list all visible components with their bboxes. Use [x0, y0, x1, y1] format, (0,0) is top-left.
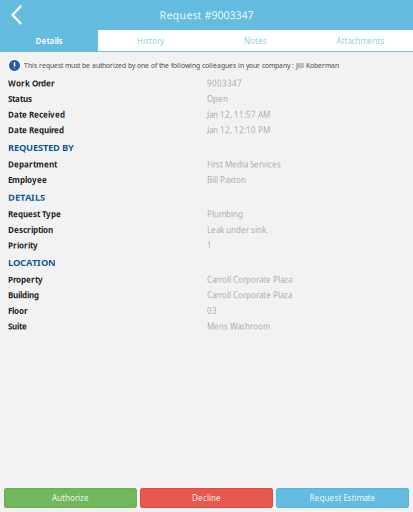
staticText: Notes — [244, 36, 267, 46]
staticText: Authorize — [52, 493, 89, 503]
staticText: Building — [8, 290, 39, 300]
staticText: Carroll Corporate Plaza — [207, 290, 292, 300]
button[interactable]: History — [98, 30, 203, 52]
staticText: Open — [207, 94, 228, 104]
staticText: Attachments — [336, 36, 384, 46]
staticText: Jan 12, 12:10 PM — [207, 125, 270, 135]
staticText: Decline — [192, 493, 221, 503]
button[interactable]: Request Estimate — [276, 488, 409, 508]
staticText: Suite — [8, 321, 27, 332]
staticText: Priority — [8, 240, 38, 251]
button[interactable]: Notes — [203, 30, 308, 52]
staticText: History — [137, 36, 164, 46]
staticText: Jan 12, 11:57 AM — [207, 109, 270, 120]
staticText: 1 — [207, 240, 212, 251]
staticText: Property — [8, 274, 43, 285]
staticText: Carroll Corporate Plaza — [207, 274, 292, 285]
button[interactable]: Back — [0, 0, 42, 30]
button[interactable]: Attachments — [308, 30, 413, 52]
button[interactable]: Authorize — [4, 488, 137, 508]
button[interactable]: Details — [0, 30, 98, 52]
staticText: 03 — [207, 305, 217, 316]
staticText: REQUESTED BY — [8, 141, 74, 153]
staticText: This request must be authorized by one o… — [24, 61, 339, 70]
staticText: Work Order — [8, 78, 55, 89]
staticText: Request Type — [8, 209, 61, 219]
staticText: Status — [8, 94, 32, 104]
staticText: Request Estimate — [310, 493, 376, 503]
staticText: DETAILS — [8, 191, 45, 203]
staticText: LOCATION — [8, 256, 56, 269]
staticText: Department — [8, 159, 57, 170]
staticText: Floor — [8, 305, 28, 316]
staticText: Request #9003347 — [159, 8, 253, 22]
staticText: Bill Paxton — [207, 175, 246, 185]
staticText: 9003347 — [207, 78, 242, 89]
staticText: Plumbing — [207, 209, 243, 219]
staticText: Date Required — [8, 125, 64, 135]
staticText: Mens Washroom — [207, 321, 270, 332]
staticText: Details — [35, 36, 62, 46]
button[interactable]: Decline — [140, 488, 273, 508]
staticText: Description — [8, 224, 53, 235]
staticText: Date Received — [8, 109, 65, 120]
staticText: Leak under sink. — [207, 224, 268, 235]
staticText: First Media Services — [207, 159, 281, 170]
staticText: Employee — [8, 175, 47, 185]
